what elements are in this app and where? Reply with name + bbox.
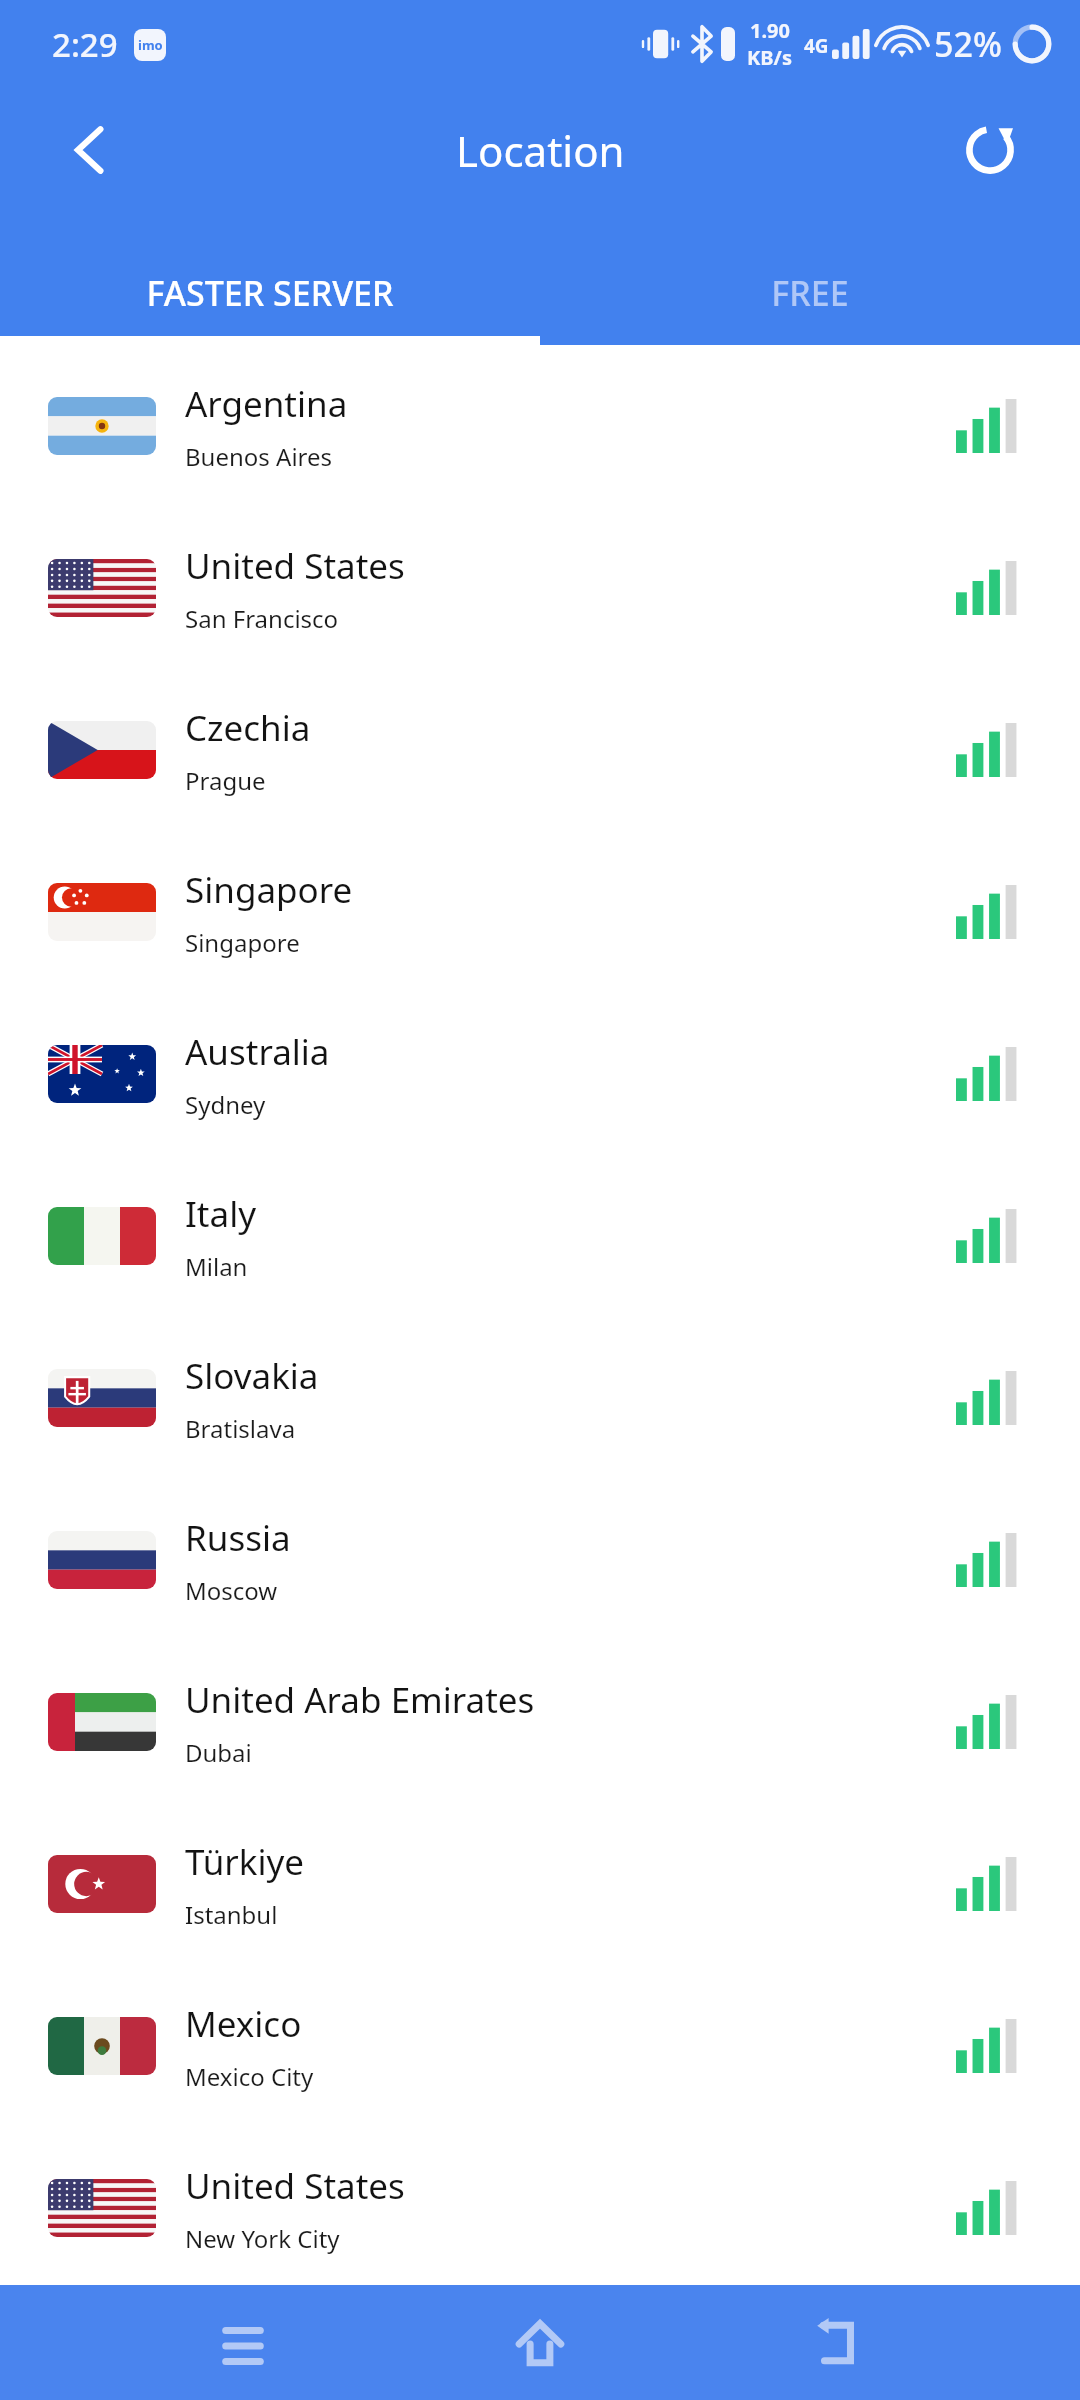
staticText: Australia — [185, 1028, 330, 1076]
staticText: Singapore — [185, 866, 353, 914]
button[interactable]: Czechia — [0, 669, 1080, 831]
button[interactable]: Back — [783, 2288, 893, 2398]
staticText: Buenos Aires — [185, 440, 333, 473]
staticText: Moscow — [185, 1574, 278, 1607]
staticText: 1.90 — [750, 17, 790, 44]
button[interactable]: Home — [485, 2288, 595, 2398]
staticText: San Francisco — [185, 602, 339, 635]
button[interactable]: United States — [0, 2127, 1080, 2289]
button[interactable]: Refresh — [948, 108, 1032, 192]
staticText: Location — [456, 122, 625, 179]
staticText: New York City — [185, 2222, 340, 2255]
staticText: FREE — [771, 270, 849, 316]
staticText: Prague — [185, 764, 266, 797]
button[interactable]: Slovakia — [0, 1317, 1080, 1479]
staticText: Italy — [185, 1190, 257, 1238]
button[interactable]: FASTER SERVER — [0, 243, 540, 343]
staticText: Argentina — [185, 380, 348, 428]
staticText: Mexico City — [185, 2060, 314, 2093]
staticText: Czechia — [185, 704, 311, 752]
button[interactable]: Russia — [0, 1479, 1080, 1641]
staticText: Türkiye — [185, 1838, 305, 1886]
staticText: Singapore — [185, 926, 300, 959]
button[interactable]: Recent apps — [188, 2288, 298, 2398]
staticText: Istanbul — [185, 1898, 278, 1931]
staticText: Sydney — [185, 1088, 266, 1121]
staticText: imo — [138, 36, 163, 54]
staticText: Bratislava — [185, 1412, 296, 1445]
staticText: United States — [185, 2162, 405, 2210]
button[interactable]: Back — [48, 108, 132, 192]
button[interactable]: Singapore — [0, 831, 1080, 993]
staticText: Dubai — [185, 1736, 252, 1769]
button[interactable]: Mexico — [0, 1965, 1080, 2127]
staticText: 2:29 — [52, 22, 118, 67]
button[interactable]: United States — [0, 507, 1080, 669]
button[interactable]: Argentina — [0, 345, 1080, 507]
staticText: FASTER SERVER — [146, 270, 394, 316]
staticText: United States — [185, 542, 405, 590]
staticText: Mexico — [185, 2000, 302, 2048]
staticText: United Arab Emirates — [185, 1676, 535, 1724]
staticText: 52% — [934, 21, 1002, 67]
button[interactable]: Türkiye — [0, 1803, 1080, 1965]
staticText: Russia — [185, 1514, 291, 1562]
button[interactable]: Australia — [0, 993, 1080, 1155]
button[interactable]: Italy — [0, 1155, 1080, 1317]
staticText: KB/s — [747, 44, 792, 71]
staticText: Slovakia — [185, 1352, 319, 1400]
button[interactable]: FREE — [540, 243, 1080, 343]
staticText: Milan — [185, 1250, 248, 1283]
staticText: 4G — [804, 33, 829, 59]
button[interactable]: United Arab Emirates — [0, 1641, 1080, 1803]
